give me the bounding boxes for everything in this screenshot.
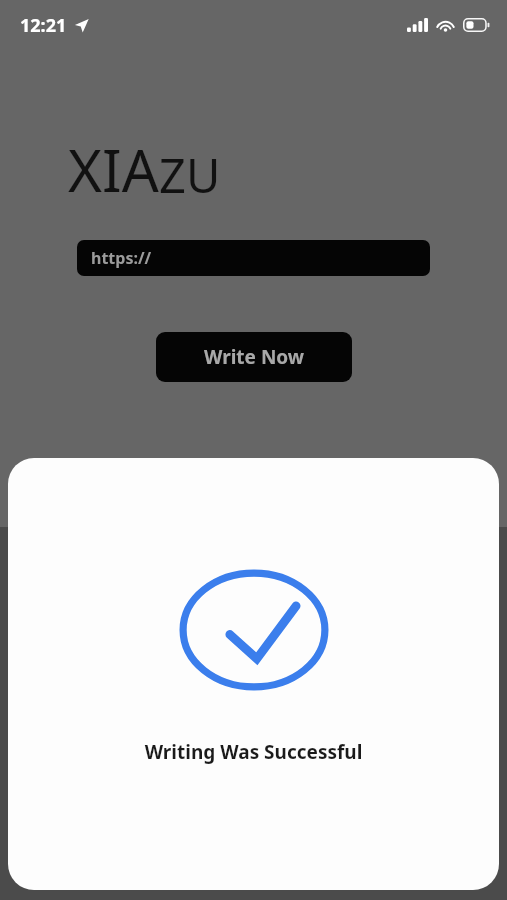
button[interactable]: Write Now xyxy=(156,332,352,382)
button[interactable]: https:// xyxy=(77,240,430,276)
other: Success xyxy=(176,566,332,694)
staticText: https:// xyxy=(91,247,152,269)
staticText: Write Now xyxy=(204,344,305,370)
staticText: 12:21 xyxy=(20,13,67,38)
staticText: ZU xyxy=(159,143,221,207)
staticText: Writing Was Successful xyxy=(8,739,499,765)
staticText: XIA xyxy=(68,130,159,209)
